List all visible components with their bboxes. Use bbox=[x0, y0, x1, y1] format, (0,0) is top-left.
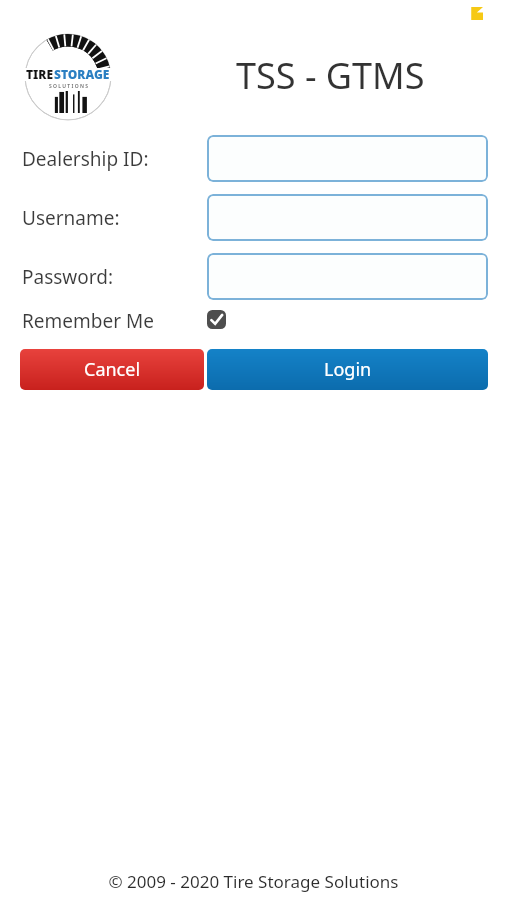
staticText: © 2009 - 2020 Tire Storage Solutions bbox=[108, 870, 399, 893]
staticText: Username: bbox=[22, 205, 120, 231]
button[interactable]: Remember Me bbox=[12, 308, 192, 334]
staticText: Remember Me bbox=[22, 308, 154, 334]
button[interactable]: Username: bbox=[207, 194, 488, 241]
button[interactable]: Dealership ID: bbox=[207, 135, 488, 182]
staticText: STORAGE bbox=[54, 66, 110, 82]
button[interactable]: Password: bbox=[207, 253, 488, 300]
other: Notification bbox=[469, 7, 483, 20]
button[interactable]: Remember Me bbox=[207, 310, 226, 329]
button[interactable]: Cancel bbox=[20, 349, 204, 390]
staticText: S O L U T I O N S bbox=[49, 83, 88, 90]
button[interactable]: Login bbox=[207, 349, 488, 390]
staticText: TSS - GTMS bbox=[236, 51, 425, 100]
staticText: Dealership ID: bbox=[22, 146, 149, 172]
staticText: Cancel bbox=[84, 357, 141, 382]
staticText: Password: bbox=[22, 264, 114, 290]
staticText: Login bbox=[324, 357, 372, 382]
staticText: TIRE bbox=[26, 66, 54, 82]
